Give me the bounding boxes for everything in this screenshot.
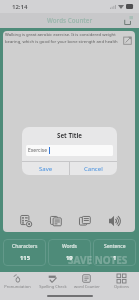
staticText: Characters xyxy=(12,243,38,250)
staticText: Walking is great aerobic exercise. It is… xyxy=(5,32,125,44)
staticText: 19 xyxy=(66,254,73,262)
staticText: Save xyxy=(39,165,53,173)
button[interactable]: Paste xyxy=(76,212,93,229)
button[interactable]: Pronunciation xyxy=(1,274,34,289)
staticText: 12:14 xyxy=(12,3,28,11)
staticText: Pronunciation xyxy=(4,284,31,289)
button[interactable]: Exercise xyxy=(26,145,113,156)
button[interactable]: Speak xyxy=(106,212,123,229)
staticText: 1 xyxy=(113,254,117,262)
button[interactable]: Words xyxy=(48,239,91,266)
staticText: Options xyxy=(114,284,129,289)
staticText: 115 xyxy=(20,254,30,262)
staticText: Words xyxy=(62,243,78,250)
staticText: Spelling Check xyxy=(39,284,67,289)
staticText: Words Counter xyxy=(47,16,93,24)
button[interactable]: Options xyxy=(105,274,138,289)
button[interactable]: Share xyxy=(122,14,135,27)
button[interactable]: Expand xyxy=(121,34,133,46)
button[interactable]: Save xyxy=(22,162,69,175)
staticText: word Counter xyxy=(74,284,100,289)
staticText: Exercise xyxy=(28,147,48,154)
button[interactable]: Characters xyxy=(3,239,46,266)
staticText: Cancel xyxy=(84,165,103,173)
button[interactable]: Spelling Check xyxy=(36,274,69,289)
staticText: SAVE NOTES xyxy=(68,253,128,267)
staticText: Set Title xyxy=(22,131,117,139)
button[interactable]: word Counter xyxy=(70,274,103,289)
button[interactable]: Sentence xyxy=(93,239,136,266)
button[interactable]: Word count xyxy=(17,212,34,229)
button[interactable]: Cancel xyxy=(70,162,117,175)
button[interactable]: Copy xyxy=(47,212,64,229)
staticText: Sentence xyxy=(104,243,126,250)
